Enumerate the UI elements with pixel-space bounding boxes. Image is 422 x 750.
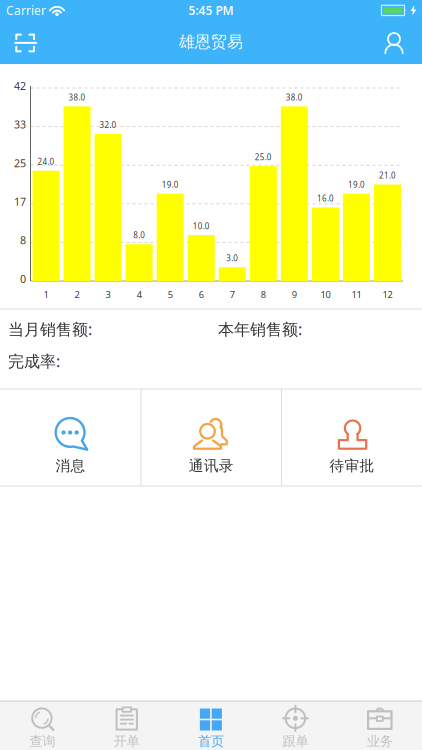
- staticText: 25.0: [255, 152, 272, 162]
- staticText: 跟单: [282, 733, 308, 749]
- staticText: 首页: [198, 733, 224, 749]
- staticText: 5:45 PM: [188, 2, 233, 18]
- staticText: 38.0: [69, 92, 86, 103]
- staticText: 9: [292, 288, 297, 301]
- button[interactable]: 开单: [84, 701, 169, 750]
- staticText: 19.0: [162, 179, 179, 190]
- button[interactable]: 通讯录: [141, 389, 281, 485]
- button[interactable]: Scan QR code: [3, 21, 47, 65]
- staticText: 2: [75, 288, 80, 301]
- staticText: 21.0: [379, 170, 396, 181]
- staticText: 通讯录: [189, 457, 234, 475]
- staticText: 雄恩贸易: [179, 32, 243, 52]
- button[interactable]: Profile: [372, 20, 416, 64]
- staticText: 消息: [56, 457, 86, 475]
- staticText: 11: [351, 288, 361, 301]
- staticText: 32.0: [100, 120, 117, 130]
- staticText: Carrier: [6, 2, 46, 18]
- staticText: 5: [168, 288, 173, 301]
- button[interactable]: 查询: [0, 701, 84, 750]
- staticText: 42: [14, 79, 26, 93]
- button[interactable]: 消息: [0, 389, 140, 485]
- staticText: 待审批: [329, 457, 374, 475]
- button[interactable]: 跟单: [253, 701, 338, 750]
- staticText: 33: [14, 117, 26, 131]
- staticText: 完成率:: [8, 350, 60, 372]
- staticText: 3.0: [226, 253, 238, 263]
- staticText: 8.0: [133, 230, 145, 240]
- staticText: 开单: [114, 733, 140, 749]
- staticText: 6: [199, 288, 204, 301]
- staticText: 8: [261, 288, 266, 301]
- staticText: 本年销售额:: [218, 318, 302, 340]
- staticText: 0: [20, 272, 26, 286]
- button[interactable]: 业务: [338, 701, 422, 750]
- button[interactable]: 首页: [169, 701, 253, 750]
- staticText: 3: [106, 288, 111, 301]
- staticText: 业务: [367, 733, 393, 749]
- staticText: 16.0: [317, 193, 334, 204]
- staticText: 10.0: [193, 221, 210, 231]
- staticText: 10: [320, 288, 330, 301]
- staticText: 7: [230, 288, 235, 301]
- staticText: 17: [14, 194, 26, 209]
- staticText: 24.0: [37, 156, 54, 167]
- button[interactable]: 待审批: [282, 389, 422, 485]
- staticText: 8: [20, 233, 26, 247]
- staticText: 1: [43, 288, 48, 301]
- staticText: 38.0: [286, 92, 303, 103]
- staticText: 25: [14, 156, 26, 170]
- staticText: 12: [382, 288, 392, 301]
- staticText: 19.0: [348, 179, 365, 190]
- staticText: 查询: [29, 733, 55, 749]
- staticText: 4: [137, 288, 142, 301]
- staticText: 当月销售额:: [8, 318, 92, 340]
